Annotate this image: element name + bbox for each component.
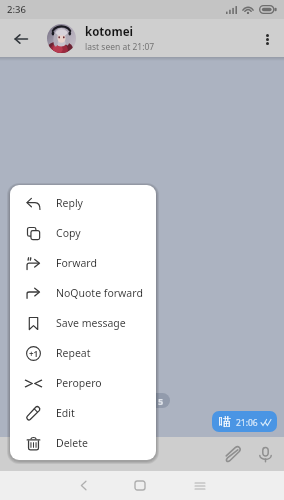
staticText: Reply bbox=[56, 196, 83, 210]
staticText: Peropero bbox=[56, 376, 102, 390]
button[interactable]: Forward bbox=[10, 248, 156, 278]
staticText: Delete bbox=[56, 436, 88, 450]
staticText: 喵 bbox=[219, 414, 231, 429]
staticText: 2:36 bbox=[7, 3, 26, 16]
button[interactable]: +1 bbox=[10, 338, 156, 368]
button[interactable]: Home bbox=[124, 471, 156, 500]
button[interactable]: Attach bbox=[219, 440, 245, 468]
button[interactable]: Back bbox=[0, 19, 41, 57]
button[interactable]: Voice message bbox=[252, 440, 278, 468]
button[interactable]: Peropero bbox=[10, 368, 156, 398]
button[interactable]: More options bbox=[250, 19, 284, 57]
staticText: 5 bbox=[158, 395, 164, 407]
staticText: Save message bbox=[56, 316, 126, 330]
staticText: kotomei bbox=[85, 24, 134, 40]
button[interactable]: Recents bbox=[184, 471, 216, 500]
staticText: NoQuote forward bbox=[56, 286, 143, 300]
staticText: Edit bbox=[56, 406, 75, 420]
staticText: last seen at 21:07 bbox=[85, 41, 155, 53]
button[interactable]: Delete bbox=[10, 428, 156, 458]
button[interactable]: NoQuote forward bbox=[10, 278, 156, 308]
button[interactable]: Edit bbox=[10, 398, 156, 428]
staticText: Copy bbox=[56, 226, 81, 240]
button[interactable]: Reply bbox=[10, 188, 156, 218]
button[interactable]: Save message bbox=[10, 308, 156, 338]
staticText: +1 bbox=[29, 348, 39, 359]
staticText: 21:06 bbox=[236, 417, 258, 429]
button[interactable]: Copy bbox=[10, 218, 156, 248]
staticText: Repeat bbox=[56, 346, 91, 360]
staticText: Forward bbox=[56, 256, 97, 270]
button[interactable]: Back bbox=[67, 471, 99, 500]
